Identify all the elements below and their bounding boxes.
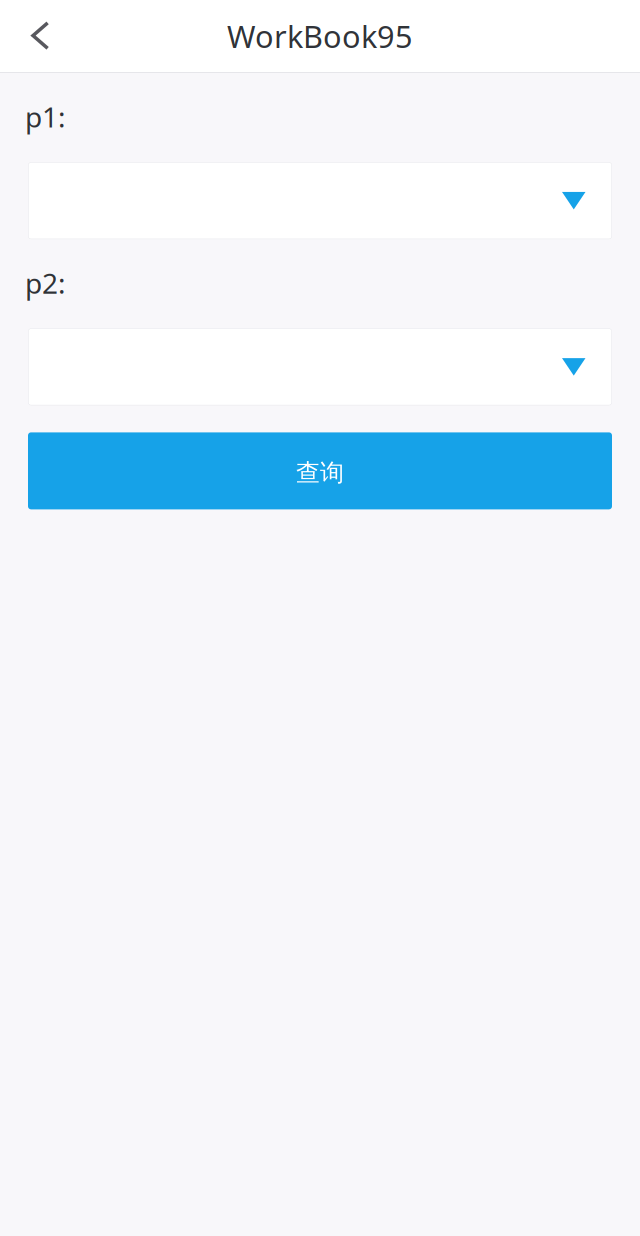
staticText: 查询 bbox=[296, 458, 344, 488]
staticText: p1: bbox=[25, 98, 66, 135]
staticText: WorkBook95 bbox=[227, 16, 413, 56]
button[interactable]: p1:选择 bbox=[28, 162, 612, 239]
staticText: p2: bbox=[25, 264, 66, 301]
button[interactable]: 查询 bbox=[28, 432, 612, 509]
button[interactable]: p2:选择 bbox=[28, 328, 612, 405]
button[interactable]: Back bbox=[0, 5, 64, 67]
